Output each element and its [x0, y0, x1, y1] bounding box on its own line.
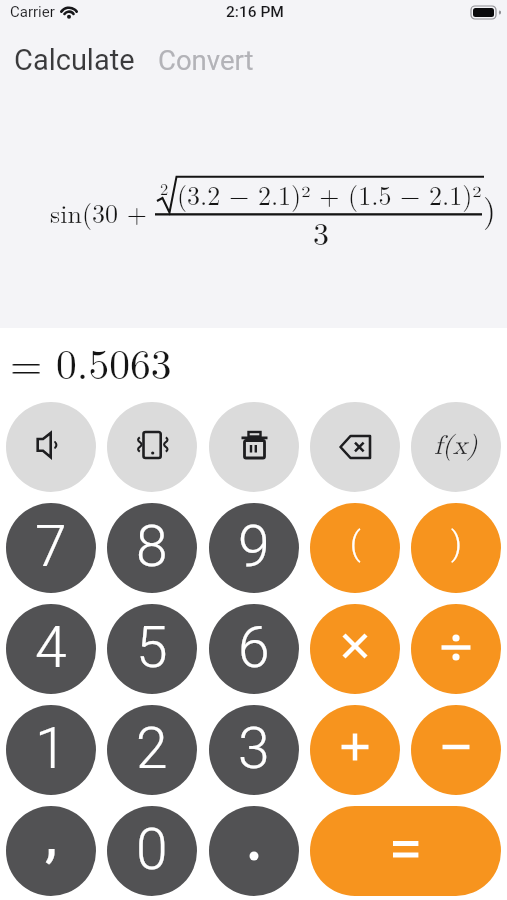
staticText: 6: [238, 614, 270, 681]
button[interactable]: [310, 402, 400, 492]
button[interactable]: [6, 402, 96, 492]
staticText: (: [350, 524, 361, 563]
button[interactable]: [107, 402, 197, 492]
staticText: Calculate: [14, 43, 135, 77]
button[interactable]: 6: [209, 604, 299, 694]
button[interactable]: Convert: [158, 44, 254, 76]
staticText: (3.2 − 2.1)² + (1.5 − 2.1)²: [177, 176, 482, 213]
staticText: = 0.5063: [10, 332, 172, 391]
staticText: ): [483, 185, 496, 232]
button[interactable]: ,: [6, 806, 96, 896]
button[interactable]: 0: [107, 806, 197, 896]
button[interactable]: [209, 806, 299, 896]
staticText: f(x): [434, 424, 478, 462]
staticText: 8: [136, 513, 168, 580]
staticText: ): [451, 524, 462, 563]
button[interactable]: 8: [107, 503, 197, 593]
button[interactable]: Calculate: [14, 43, 135, 77]
button[interactable]: [209, 402, 299, 492]
staticText: 3: [238, 715, 270, 782]
button[interactable]: [411, 604, 501, 694]
staticText: 3: [313, 209, 330, 254]
staticText: ,: [45, 806, 58, 871]
staticText: 2:16 PM: [226, 3, 284, 21]
button[interactable]: f(x): [411, 402, 501, 492]
staticText: Carrier: [10, 3, 55, 21]
button[interactable]: ): [411, 503, 501, 593]
button[interactable]: 9: [209, 503, 299, 593]
staticText: 4: [35, 614, 67, 681]
button[interactable]: 1: [6, 705, 96, 795]
button[interactable]: [310, 604, 400, 694]
button[interactable]: 7: [6, 503, 96, 593]
staticText: 1: [35, 715, 67, 782]
button[interactable]: [310, 705, 400, 795]
button[interactable]: (: [310, 503, 400, 593]
staticText: 7: [35, 513, 67, 580]
button[interactable]: 4: [6, 604, 96, 694]
button[interactable]: 2: [107, 705, 197, 795]
button[interactable]: 5: [107, 604, 197, 694]
button[interactable]: 3: [209, 705, 299, 795]
staticText: sin(30 +: [50, 194, 147, 231]
staticText: 0: [136, 816, 168, 883]
staticText: 2: [136, 715, 168, 782]
staticText: 9: [238, 513, 270, 580]
staticText: 5: [136, 614, 168, 681]
staticText: Convert: [158, 44, 254, 76]
staticText: 2: [160, 176, 169, 199]
button[interactable]: [411, 705, 501, 795]
button[interactable]: [310, 806, 501, 896]
